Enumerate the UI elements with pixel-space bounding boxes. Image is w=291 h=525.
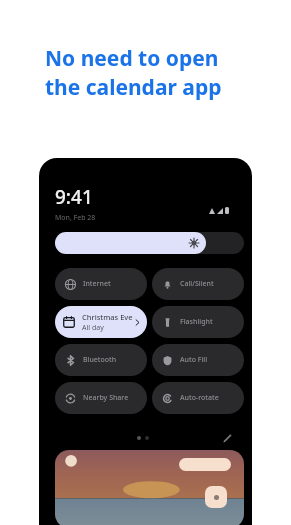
button[interactable]: Brightness — [55, 232, 206, 254]
staticText: Call/Silent — [180, 279, 214, 289]
button[interactable]: Nearby Share — [55, 382, 147, 414]
button[interactable]: Christmas Eve — [55, 306, 147, 338]
button[interactable]: Internet — [55, 268, 147, 300]
staticText: Christmas Eve — [82, 312, 133, 322]
button[interactable]: Auto-rotate — [152, 382, 244, 414]
staticText: 9:41 — [55, 184, 93, 210]
staticText: Flashlight — [180, 317, 213, 327]
button[interactable]: Auto Fill — [152, 344, 244, 376]
button[interactable]: Bluetooth — [55, 344, 147, 376]
button[interactable]: Edit tiles — [218, 429, 236, 447]
button[interactable]: Flashlight — [152, 306, 244, 338]
staticText: Auto Fill — [180, 355, 208, 365]
staticText: Mon, Feb 28 — [55, 213, 96, 223]
staticText: Nearby Share — [83, 393, 129, 403]
button[interactable]: Action — [55, 450, 244, 525]
staticText: Bluetooth — [83, 355, 117, 365]
staticText: Auto-rotate — [180, 393, 219, 403]
staticText: the calendar app — [45, 73, 222, 102]
button[interactable]: Call/Silent — [152, 268, 244, 300]
staticText: No need to open — [45, 44, 219, 73]
staticText: All day — [82, 323, 104, 333]
staticText: Internet — [83, 279, 111, 289]
button[interactable]: Action — [179, 458, 231, 471]
button[interactable]: Capture — [205, 486, 227, 508]
